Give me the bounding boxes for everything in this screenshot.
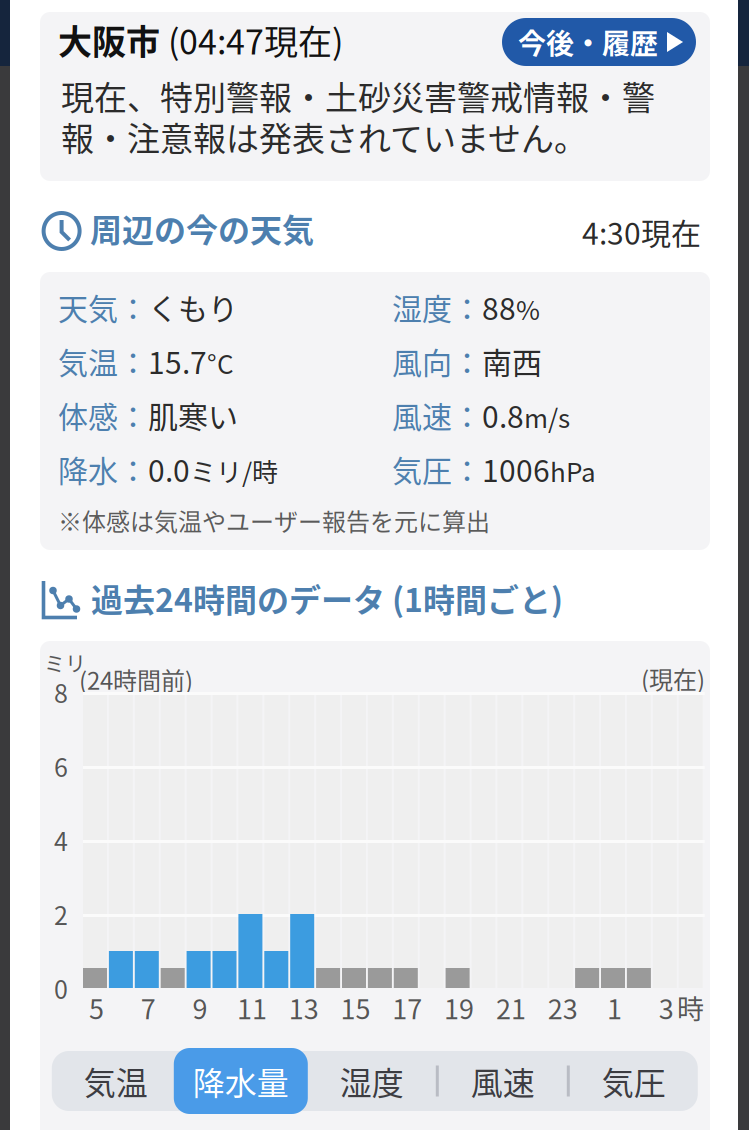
staticText: 11 [237, 988, 267, 1027]
staticText: ： [118, 447, 148, 491]
staticText: 19 [444, 988, 474, 1027]
staticText: ： [118, 393, 148, 437]
staticText: 7 [141, 988, 156, 1027]
button[interactable]: 湿度 [308, 1048, 436, 1114]
staticText: 2 [54, 896, 68, 932]
staticText: (04:47現在) [160, 15, 343, 64]
staticText: 9 [193, 988, 208, 1027]
button[interactable]: 今後・履歴 [502, 18, 696, 66]
staticText: 南西 [482, 339, 542, 383]
staticText: ： [452, 393, 482, 437]
staticText: 15 [340, 988, 370, 1027]
staticText: 6 [54, 748, 68, 784]
staticText: ミリ [44, 647, 86, 677]
staticText: ： [452, 339, 482, 383]
staticText: 0.8 [482, 393, 524, 437]
staticText: ※体感は気温やユーザー報告を元に算出 [58, 503, 490, 538]
staticText: 天気 [58, 285, 118, 329]
staticText: 1006 [482, 447, 550, 491]
button[interactable]: 気圧 [570, 1048, 698, 1114]
staticText: 13 [289, 988, 319, 1027]
staticText: 風速 [471, 1058, 535, 1104]
button[interactable]: 降水量 [180, 1048, 308, 1114]
staticText: 周辺の今の天気 [90, 205, 314, 251]
staticText: 気温 [84, 1058, 148, 1104]
staticText: 23 [548, 988, 578, 1027]
staticText: 過去24時間のデータ (1時間ごと) [91, 575, 563, 621]
staticText: m/s [524, 398, 570, 435]
button[interactable]: 気温 [52, 1048, 180, 1114]
staticText: 風向 [392, 339, 452, 383]
staticText: 大阪市 [58, 15, 160, 64]
staticText: 15.7 [148, 339, 207, 383]
staticText: 3 [659, 988, 674, 1027]
staticText: hPa [550, 452, 596, 489]
staticText: 肌寒い [148, 393, 238, 437]
button[interactable]: 風速 [439, 1048, 567, 1114]
staticText: 0.0 [148, 447, 190, 491]
staticText: % [516, 290, 540, 327]
staticText: 時 [677, 988, 704, 1027]
staticText: 気温 [58, 339, 118, 383]
staticText: 湿度 [340, 1058, 404, 1104]
staticText: 1 [607, 988, 622, 1027]
staticText: くもり [148, 285, 238, 329]
staticText: 4 [54, 822, 68, 858]
staticText: (24時間前) [79, 662, 193, 697]
staticText: 8 [54, 674, 68, 710]
staticText: (現在) [641, 661, 705, 696]
staticText: 17 [392, 988, 422, 1027]
staticText: °C [207, 344, 234, 381]
staticText: 降水量 [193, 1058, 289, 1104]
staticText: ： [118, 285, 148, 329]
staticText: 現在、特別警報・土砂災害警戒情報・警 [61, 72, 655, 119]
staticText: 21 [496, 988, 526, 1027]
staticText: ： [452, 447, 482, 491]
staticText: 88 [482, 285, 516, 329]
staticText: 湿度 [392, 285, 452, 329]
staticText: 今後・履歴 [518, 22, 658, 62]
staticText: 報・注意報は発表されていません。 [61, 113, 587, 160]
staticText: 風速 [392, 393, 452, 437]
staticText: 体感 [58, 393, 118, 437]
staticText: ： [452, 285, 482, 329]
staticText: 気圧 [392, 447, 452, 491]
staticText: ： [118, 339, 148, 383]
staticText: ミリ/時 [190, 452, 278, 489]
staticText: 4:30現在 [582, 210, 701, 253]
staticText: 0 [54, 970, 68, 1006]
staticText: 5 [89, 988, 104, 1027]
staticText: 気圧 [602, 1058, 666, 1104]
staticText: 降水 [58, 447, 118, 491]
